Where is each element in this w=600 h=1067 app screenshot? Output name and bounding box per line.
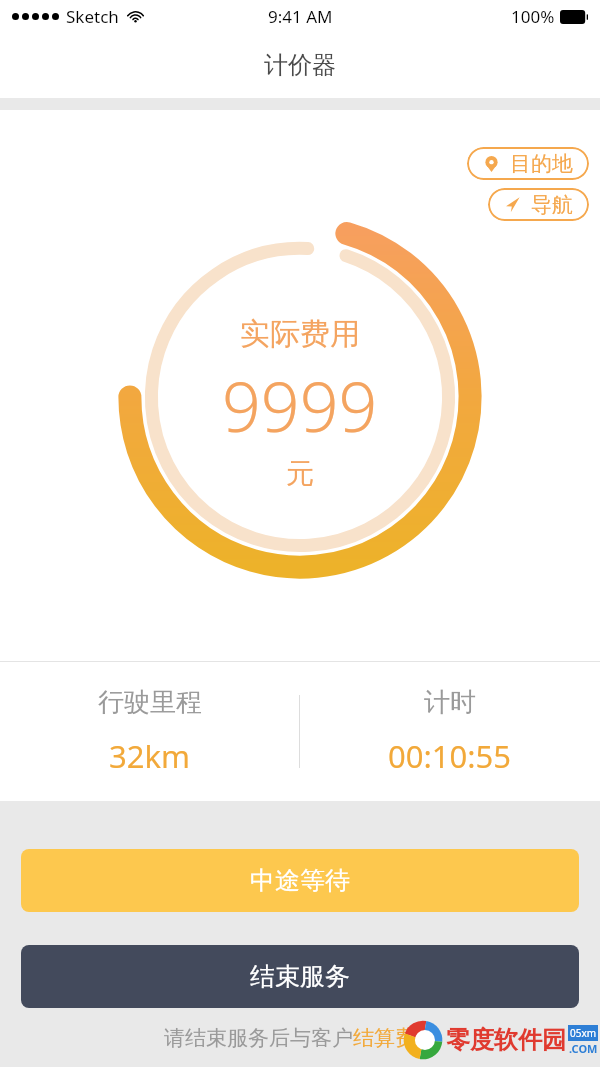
staticText: 9:41 AM — [268, 5, 333, 28]
button[interactable]: 目的地 — [467, 147, 589, 180]
other: Watermark — [402, 1019, 598, 1061]
staticText: .COM — [569, 1041, 598, 1056]
staticText: Sketch — [66, 5, 119, 28]
staticText: 目的地 — [510, 151, 573, 177]
staticText: 结束服务 — [250, 961, 350, 992]
staticText: 零度软件园 — [446, 1025, 566, 1055]
button[interactable]: 结束服务 — [21, 945, 579, 1008]
button[interactable]: 行驶里程 — [0, 662, 299, 801]
staticText: 请结束服务后与客户结算费用 — [164, 1025, 437, 1051]
staticText: 导航 — [531, 192, 573, 218]
button[interactable]: 导航 — [488, 188, 589, 221]
staticText: 计时 — [424, 686, 476, 719]
staticText: 05xm — [570, 1026, 597, 1040]
staticText: 100% — [511, 5, 555, 28]
staticText: 中途等待 — [250, 865, 350, 896]
staticText: 32km — [109, 735, 191, 777]
staticText: 9999 — [222, 359, 378, 452]
staticText: 元 — [286, 456, 314, 491]
staticText: 计价器 — [264, 50, 336, 80]
staticText: 行驶里程 — [98, 686, 202, 719]
staticText: 实际费用 — [240, 315, 360, 353]
button[interactable]: 中途等待 — [21, 849, 579, 912]
button[interactable]: 计时 — [300, 662, 600, 801]
staticText: 00:10:55 — [388, 735, 512, 777]
